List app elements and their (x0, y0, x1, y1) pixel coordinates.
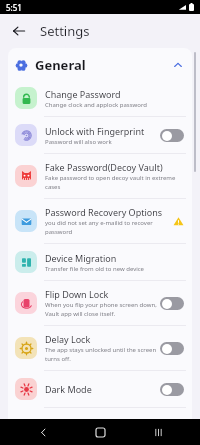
button[interactable]: Flip Down Lock (8, 281, 192, 325)
staticText: Fake password to open decoy vault in ext… (45, 174, 184, 191)
button[interactable]: General (8, 48, 192, 80)
other: Warning (173, 216, 184, 227)
button[interactable]: Recents (143, 419, 173, 445)
button[interactable]: Toggle (160, 297, 184, 310)
staticText: Delay Lock (45, 333, 91, 345)
button[interactable]: Toggle (160, 383, 184, 396)
button[interactable]: Unlock with Fingerprint (8, 117, 192, 153)
button[interactable]: Toggle (160, 129, 184, 142)
staticText: Device Migration (45, 252, 117, 264)
button[interactable]: Password Recovery Options (8, 199, 192, 243)
staticText: Fake Password(Decoy Vault) (45, 161, 163, 173)
staticText: Transfer file from old to new device (45, 265, 145, 273)
staticText: The app stays unlocked until the screen … (45, 346, 158, 363)
staticText: Flip Down Lock (45, 288, 109, 300)
staticText: Change clock and applock password (45, 101, 148, 109)
staticText: 5:51 (6, 2, 22, 13)
staticText: Dark Mode (45, 383, 92, 395)
staticText: General (35, 56, 172, 74)
staticText: Unlock with Fingerprint (45, 125, 145, 137)
button[interactable]: Back (8, 20, 30, 42)
staticText: Password Recovery Options (45, 206, 163, 218)
button[interactable]: Device Migration (8, 244, 192, 280)
button[interactable]: Dark Mode (8, 371, 192, 407)
button[interactable]: Fake Password(Decoy Vault) (8, 154, 192, 198)
staticText: Change Password (45, 88, 121, 100)
staticText: Password will also work (45, 138, 112, 146)
other: Collapse (172, 59, 184, 71)
staticText: When you flip your phone screen down, Va… (45, 301, 158, 318)
button[interactable]: Home (85, 419, 115, 445)
button[interactable]: Back (28, 419, 58, 445)
staticText: you did not set any e-mailid to recover … (45, 219, 173, 236)
button[interactable]: Change Password (8, 80, 192, 116)
button[interactable]: Toggle (160, 342, 184, 355)
button[interactable]: Delay Lock (8, 326, 192, 370)
staticText: Settings (40, 22, 90, 40)
